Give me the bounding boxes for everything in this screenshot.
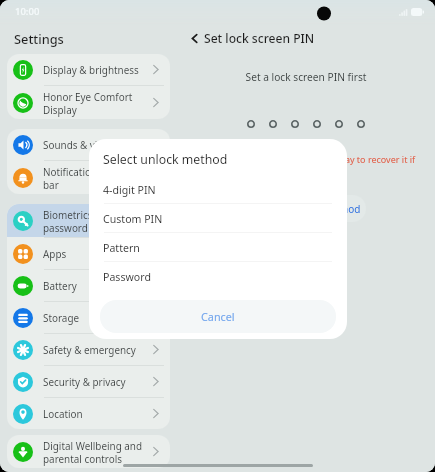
button[interactable]: 4-digit PIN — [89, 175, 347, 204]
staticText: Location — [43, 407, 151, 420]
button[interactable]: Location — [7, 398, 170, 429]
staticText: Change unlock method — [251, 202, 361, 216]
staticText: Honor Eye Comfort Display — [43, 90, 151, 116]
staticText: 4-digit PIN — [103, 183, 156, 197]
button[interactable]: Security & privacy — [7, 366, 170, 397]
button[interactable]: Change unlock method — [246, 195, 366, 222]
staticText: Settings — [14, 30, 64, 47]
button[interactable]: Pattern — [89, 233, 347, 262]
staticText: Storage — [43, 311, 151, 324]
staticText: Notification & bar — [43, 165, 151, 191]
button[interactable]: Honor Eye Comfort Display — [7, 86, 170, 119]
staticText: Set a lock screen PIN first — [177, 70, 435, 84]
staticText: Custom PIN — [103, 212, 163, 226]
staticText: Cancel — [201, 309, 235, 324]
staticText: Digital Wellbeing and parental controls — [43, 439, 151, 465]
button[interactable]: Storage — [7, 302, 170, 333]
staticText: Display & brightness — [43, 63, 151, 76]
button[interactable]: Cancel — [100, 300, 336, 333]
button[interactable]: Display & brightness — [7, 54, 170, 85]
staticText: 10:00 — [15, 5, 40, 18]
button[interactable]: Digital Wellbeing and parental controls — [7, 435, 170, 468]
staticText: Biometrics & password — [43, 208, 151, 234]
button[interactable]: Password — [89, 262, 347, 291]
staticText: Select unlock method — [103, 151, 347, 168]
button[interactable]: Biometrics & password — [7, 204, 170, 237]
staticText: Safety & emergency — [43, 343, 151, 356]
button[interactable]: Apps — [7, 238, 170, 269]
button[interactable]: Back — [185, 29, 203, 47]
staticText: Battery — [43, 279, 151, 292]
button[interactable]: Sounds & vibration — [7, 129, 170, 160]
staticText: Pattern — [103, 241, 140, 255]
staticText: Security & privacy — [43, 375, 151, 388]
button[interactable]: Custom PIN — [89, 204, 347, 233]
staticText: PIN that you can use. There is no way to… — [177, 153, 435, 178]
button[interactable]: Safety & emergency — [7, 334, 170, 365]
staticText: Sounds & vibration — [43, 138, 151, 151]
staticText: Set lock screen PIN — [204, 30, 315, 46]
button[interactable]: Battery — [7, 270, 170, 301]
staticText: Apps — [43, 247, 151, 260]
button[interactable]: Notification & bar — [7, 161, 170, 194]
staticText: Password — [103, 270, 151, 284]
